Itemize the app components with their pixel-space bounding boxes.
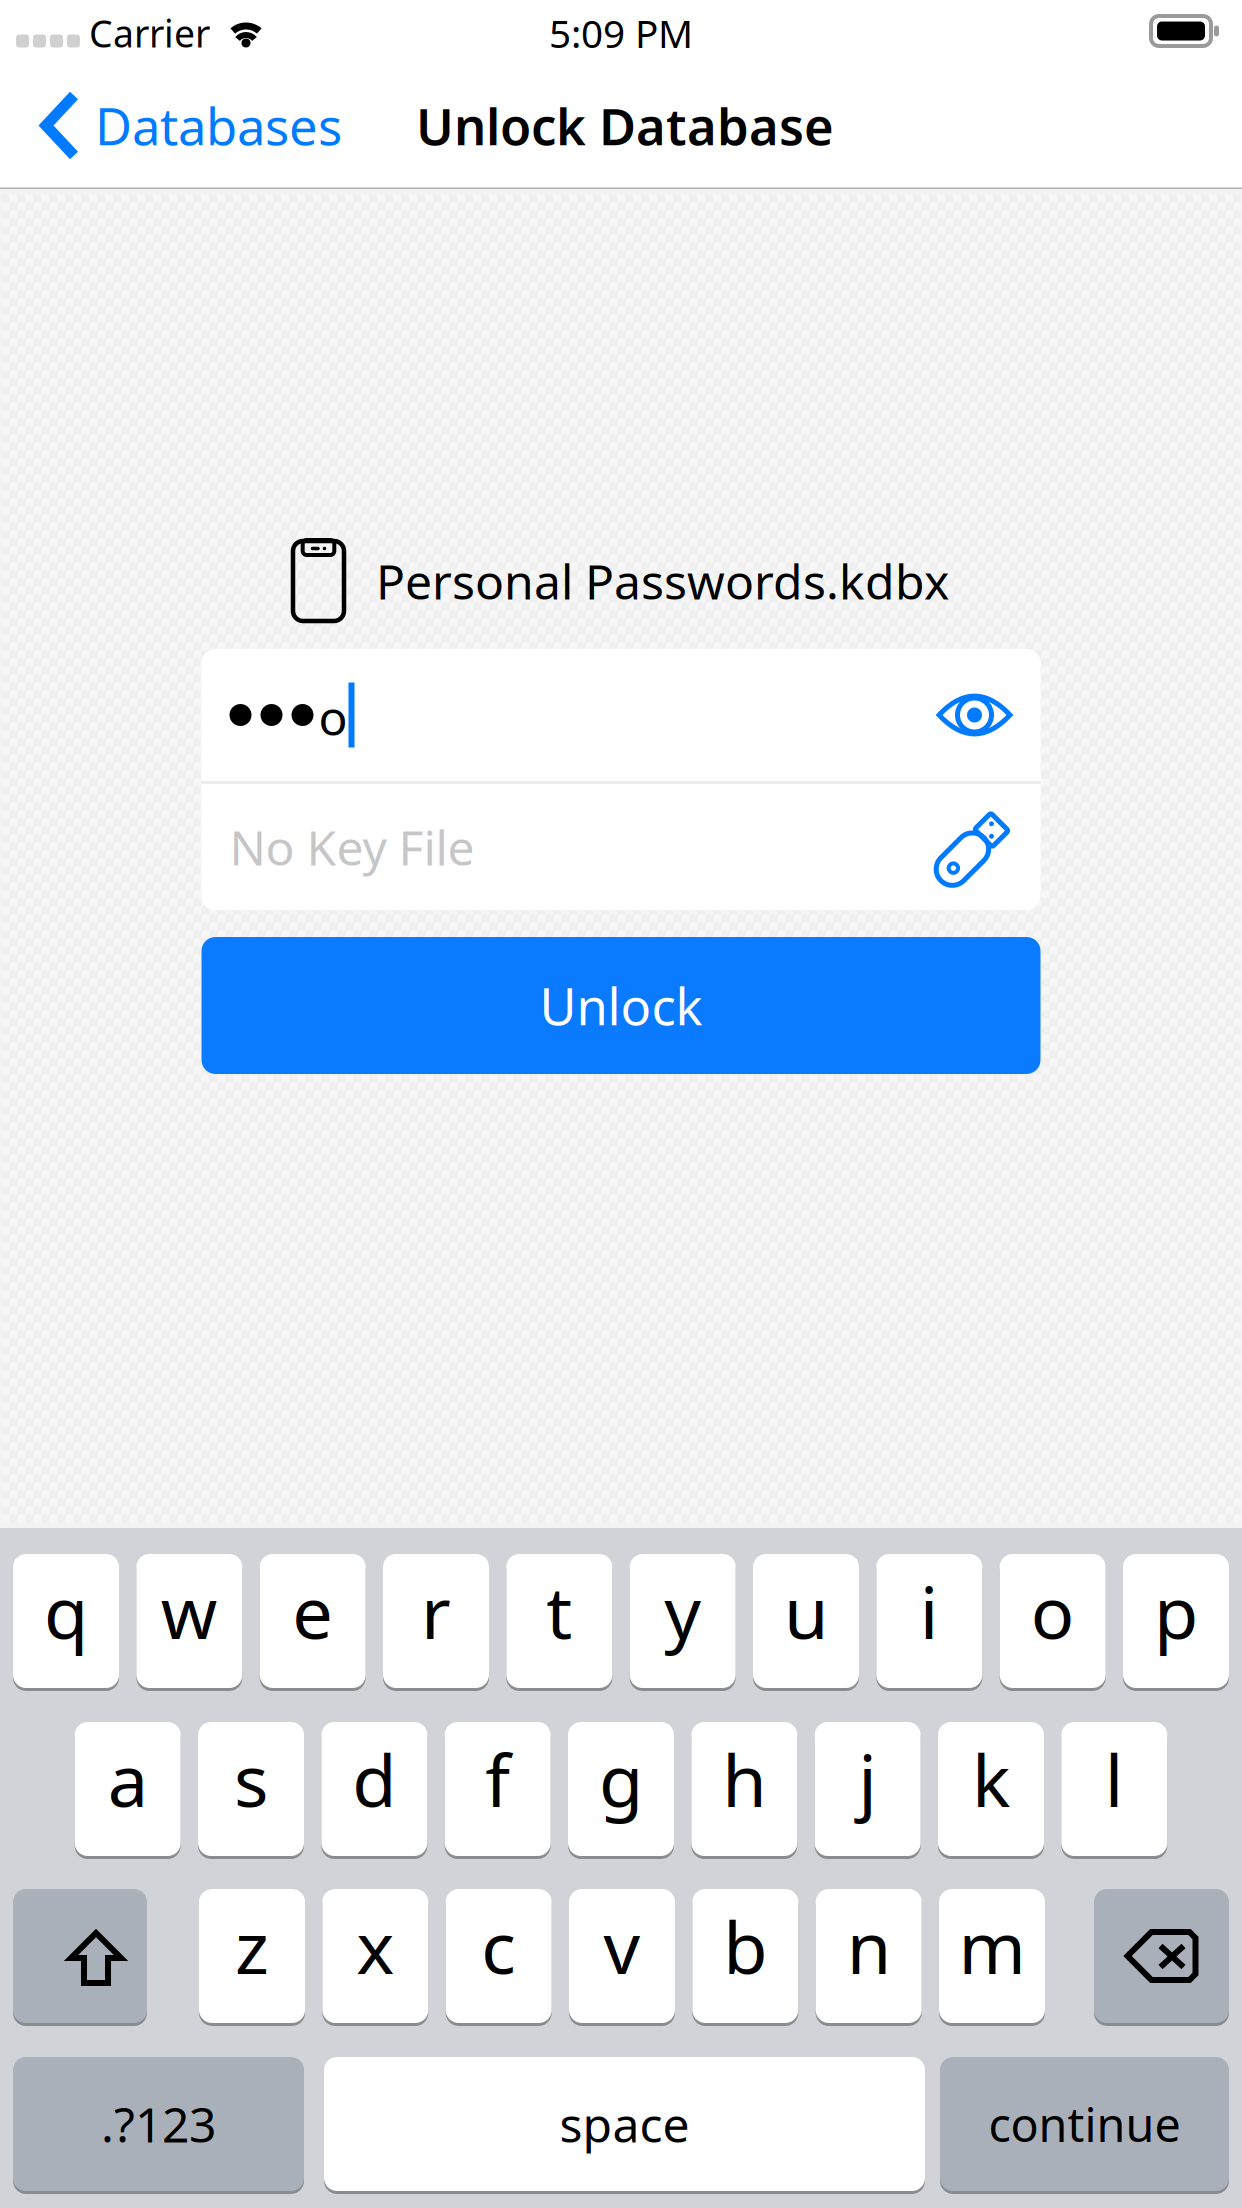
button[interactable]: b xyxy=(692,1889,798,2023)
staticText: a xyxy=(108,1731,148,1827)
staticText: t xyxy=(546,1563,572,1659)
button[interactable]: q xyxy=(13,1554,119,1688)
staticText: g xyxy=(599,1731,643,1827)
button[interactable]: x xyxy=(322,1889,428,2023)
staticText: Unlock xyxy=(539,972,702,1039)
staticText: x xyxy=(356,1898,394,1994)
staticText: Unlock Database xyxy=(416,92,834,159)
staticText: o xyxy=(318,685,347,749)
staticText: n xyxy=(847,1898,891,1994)
staticText: z xyxy=(235,1898,269,1994)
button[interactable]: o xyxy=(1000,1554,1106,1688)
staticText: q xyxy=(44,1563,88,1659)
staticText: h xyxy=(722,1731,766,1827)
button[interactable]: z xyxy=(199,1889,305,2023)
staticText: Carrier xyxy=(89,8,210,58)
button[interactable]: p xyxy=(1123,1554,1229,1688)
staticText: Personal Passwords.kdbx xyxy=(376,549,949,613)
button[interactable]: j xyxy=(815,1722,921,1856)
staticText: b xyxy=(723,1898,767,1994)
staticText: No Key File xyxy=(229,815,474,879)
staticText: p xyxy=(1154,1563,1198,1659)
button[interactable]: u xyxy=(753,1554,859,1688)
button[interactable]: Shift xyxy=(13,1889,147,2023)
button[interactable]: e xyxy=(260,1554,366,1688)
staticText: f xyxy=(485,1731,510,1827)
button[interactable]: l xyxy=(1061,1722,1167,1856)
button[interactable]: space xyxy=(324,2057,925,2191)
button[interactable]: s xyxy=(198,1722,304,1856)
staticText: v xyxy=(603,1898,640,1994)
staticText: .?123 xyxy=(101,2092,216,2156)
staticText: u xyxy=(784,1563,828,1659)
staticText: c xyxy=(481,1898,516,1994)
staticText: e xyxy=(292,1563,333,1659)
button[interactable]: Choose key file xyxy=(908,784,1040,910)
button[interactable]: Show password xyxy=(908,649,1040,781)
staticText: o xyxy=(1031,1563,1075,1659)
staticText: y xyxy=(664,1563,701,1659)
button[interactable]: continue xyxy=(940,2057,1229,2191)
button[interactable]: d xyxy=(321,1722,427,1856)
button[interactable]: a xyxy=(75,1722,181,1856)
staticText: Databases xyxy=(95,92,342,159)
button[interactable]: g xyxy=(568,1722,674,1856)
button[interactable]: v xyxy=(569,1889,675,2023)
staticText: j xyxy=(858,1731,877,1827)
button[interactable]: n xyxy=(816,1889,922,2023)
staticText: r xyxy=(421,1563,451,1659)
staticText: continue xyxy=(988,2093,1180,2155)
button[interactable]: y xyxy=(630,1554,736,1688)
staticText: m xyxy=(958,1898,1025,1994)
staticText: l xyxy=(1105,1731,1124,1827)
staticText: space xyxy=(559,2092,689,2156)
button[interactable]: m xyxy=(939,1889,1045,2023)
button[interactable]: c xyxy=(446,1889,552,2023)
staticText: k xyxy=(972,1731,1010,1827)
button[interactable]: k xyxy=(938,1722,1044,1856)
button[interactable]: .?123 xyxy=(13,2057,304,2191)
button[interactable]: r xyxy=(383,1554,489,1688)
staticText: s xyxy=(234,1731,268,1827)
button[interactable]: t xyxy=(506,1554,612,1688)
button[interactable]: Delete xyxy=(1094,1889,1229,2023)
button[interactable]: Unlock xyxy=(201,937,1040,1074)
button[interactable]: i xyxy=(876,1554,982,1688)
staticText: d xyxy=(352,1731,396,1827)
button[interactable]: h xyxy=(691,1722,797,1856)
staticText: 5:09 PM xyxy=(549,7,693,59)
button[interactable]: w xyxy=(136,1554,242,1688)
button[interactable]: Databases xyxy=(0,63,356,188)
staticText: i xyxy=(920,1563,939,1659)
staticText: w xyxy=(161,1563,218,1659)
button[interactable]: f xyxy=(445,1722,551,1856)
